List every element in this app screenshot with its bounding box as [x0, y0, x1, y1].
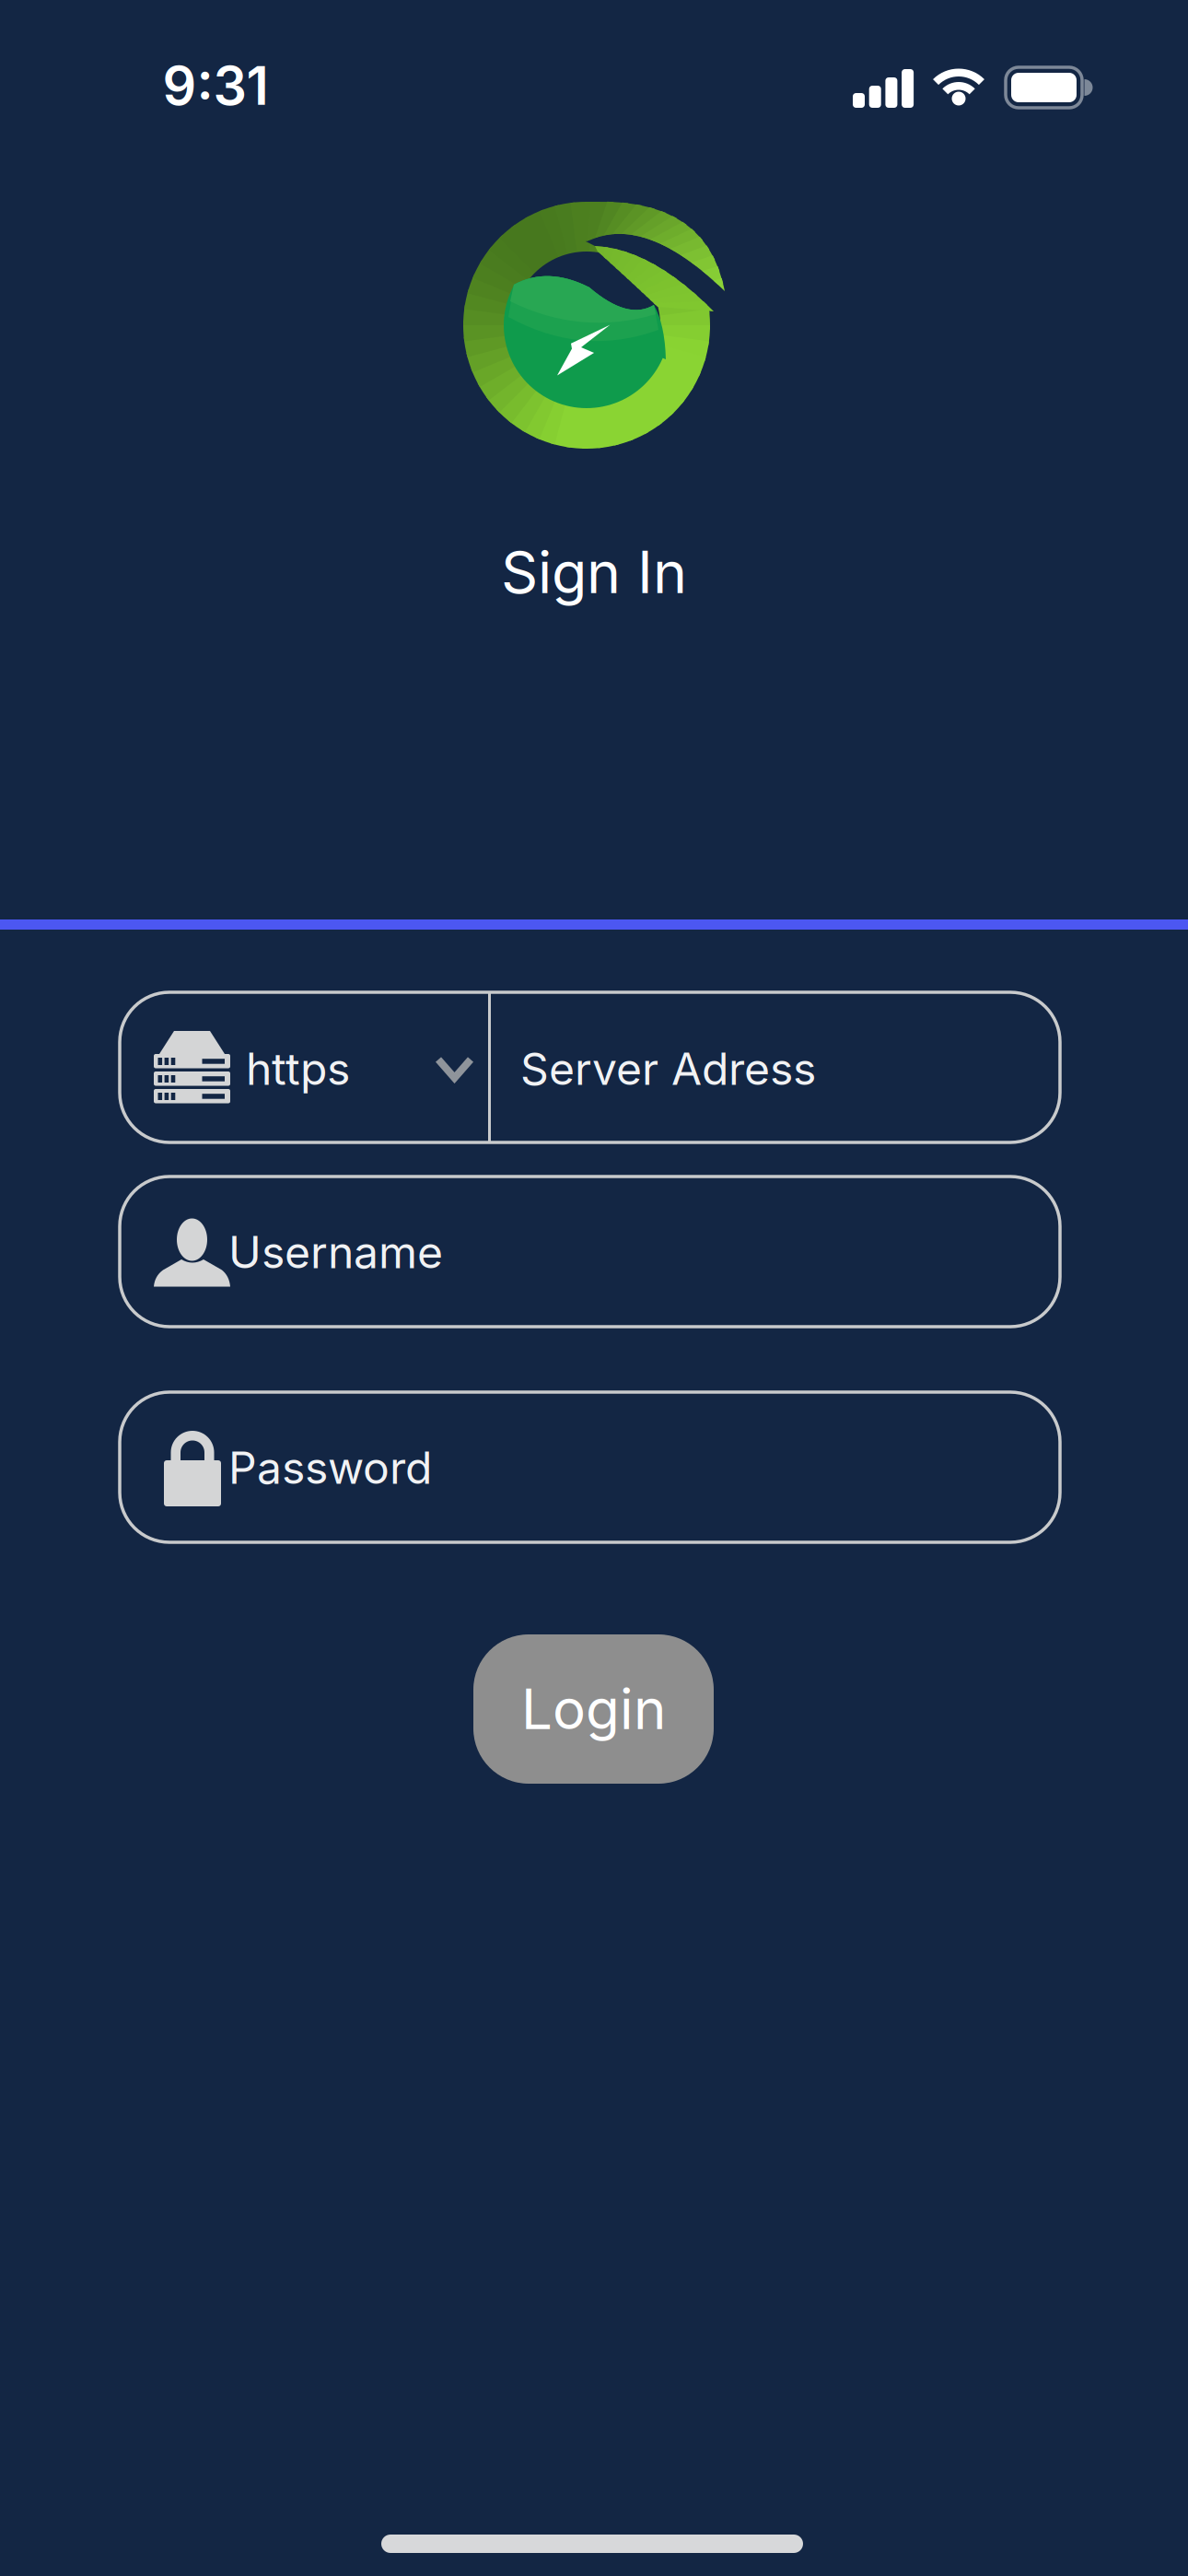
button[interactable]: https [120, 992, 488, 1142]
staticText: Sign In [501, 537, 687, 607]
staticText: https [246, 1042, 350, 1096]
staticText: Server Adress [520, 1042, 816, 1096]
button[interactable]: Password [120, 1392, 1060, 1542]
button[interactable]: Username [120, 1177, 1060, 1327]
staticText: Login [521, 1676, 666, 1742]
staticText: Password [228, 1441, 432, 1494]
staticText: 9:31 [163, 54, 268, 118]
staticText: Username [228, 1225, 443, 1279]
button[interactable]: Server Adress [491, 992, 1060, 1142]
button[interactable]: Login [473, 1634, 714, 1784]
